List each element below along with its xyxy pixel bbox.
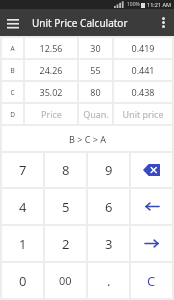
button[interactable]: Price <box>25 104 77 124</box>
button[interactable]: B <box>2 60 23 80</box>
button[interactable]: Menu <box>0 10 26 36</box>
button[interactable]: More options <box>152 9 174 36</box>
button[interactable]: Backspace <box>131 153 172 187</box>
button[interactable]: 7 <box>2 153 43 187</box>
button[interactable]: 9 <box>88 153 129 187</box>
button[interactable]: 0 <box>2 263 43 298</box>
button[interactable]: C <box>2 82 23 102</box>
staticText: Price <box>41 108 62 120</box>
staticText: A <box>10 44 15 53</box>
button[interactable]: 2 <box>45 226 86 261</box>
staticText: 35.02 <box>39 86 63 98</box>
button[interactable]: 5 <box>45 189 86 224</box>
button[interactable]: D <box>2 104 23 124</box>
button[interactable]: 8 <box>45 153 86 187</box>
button[interactable]: 0.441 <box>114 60 172 80</box>
staticText: 80 <box>90 86 101 98</box>
staticText: 2 <box>62 235 70 253</box>
button[interactable]: 00 <box>45 263 86 298</box>
staticText: 55 <box>90 64 101 76</box>
button[interactable]: Move cursor right <box>131 226 172 261</box>
staticText: 0 <box>19 272 27 290</box>
staticText: D <box>10 110 15 119</box>
button[interactable]: Move cursor left <box>131 189 172 224</box>
staticText: Unit price <box>122 108 164 120</box>
staticText: 24.26 <box>39 64 63 76</box>
button[interactable]: C <box>131 263 172 298</box>
button[interactable]: A <box>2 38 23 58</box>
button[interactable]: 6 <box>88 189 129 224</box>
staticText: C <box>147 272 156 290</box>
button[interactable]: 0.419 <box>114 38 172 58</box>
staticText: 12.56 <box>39 42 63 54</box>
staticText: 4 <box>19 198 27 216</box>
button[interactable]: Quan. <box>79 104 112 124</box>
staticText: . <box>107 272 111 290</box>
button[interactable]: 0.438 <box>114 82 172 102</box>
staticText: B > C > A <box>69 133 106 145</box>
staticText: B <box>10 66 15 75</box>
staticText: 00 <box>59 273 72 288</box>
button[interactable]: Unit price <box>114 104 172 124</box>
staticText: C <box>10 88 15 97</box>
button[interactable]: 55 <box>79 60 112 80</box>
staticText: 0.419 <box>131 42 155 54</box>
button[interactable]: 12.56 <box>25 38 77 58</box>
staticText: Unit Price Calculator <box>32 16 128 30</box>
button[interactable]: 30 <box>79 38 112 58</box>
button[interactable]: 80 <box>79 82 112 102</box>
staticText: 5 <box>62 198 70 216</box>
button[interactable]: 3 <box>88 226 129 261</box>
staticText: 30 <box>90 42 101 54</box>
staticText: 9 <box>105 161 113 179</box>
staticText: 0.441 <box>131 64 155 76</box>
staticText: 7 <box>19 161 27 179</box>
staticText: 1 <box>19 235 27 253</box>
staticText: 11:21 AM <box>147 1 171 8</box>
staticText: 0.438 <box>131 86 155 98</box>
button[interactable]: 4 <box>2 189 43 224</box>
button[interactable]: . <box>88 263 129 298</box>
button[interactable]: B > C > A <box>2 126 172 151</box>
staticText: 3 <box>105 235 113 253</box>
staticText: 6 <box>105 198 113 216</box>
staticText: 100% <box>127 1 140 8</box>
staticText: Quan. <box>83 108 109 120</box>
button[interactable]: 35.02 <box>25 82 77 102</box>
button[interactable]: 24.26 <box>25 60 77 80</box>
staticText: 8 <box>62 161 70 179</box>
button[interactable]: 1 <box>2 226 43 261</box>
